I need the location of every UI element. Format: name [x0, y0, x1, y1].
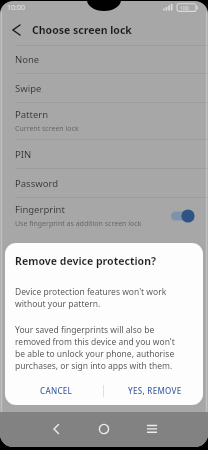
staticText: Swipe — [15, 82, 42, 95]
button[interactable] — [4, 19, 30, 41]
staticText: Current screen lock — [15, 124, 79, 134]
staticText: Remove device protection? — [15, 254, 157, 268]
button[interactable]: Swipe — [0, 74, 208, 102]
staticText: CANCEL — [40, 385, 73, 396]
staticText: 10:00 — [7, 3, 25, 13]
button[interactable] — [44, 418, 68, 440]
staticText: Choose screen lock — [32, 23, 132, 37]
staticText: PIN — [15, 148, 32, 161]
button[interactable] — [92, 418, 116, 440]
staticText: Device protection features won't work wi… — [15, 286, 167, 310]
button[interactable]: YES, REMOVE — [113, 378, 197, 403]
staticText: None — [15, 53, 40, 66]
staticText: 100 — [180, 5, 189, 12]
staticText: Use fingerprint as addition screen lock — [15, 219, 142, 229]
button[interactable]: PIN — [0, 140, 208, 168]
button[interactable] — [140, 418, 164, 440]
staticText: Pattern — [15, 108, 49, 121]
staticText: Fingerprint — [15, 203, 65, 216]
button[interactable]: Pattern — [0, 103, 208, 139]
button[interactable]: Fingerprint — [0, 198, 208, 234]
button[interactable]: Password — [0, 169, 208, 197]
staticText: Password — [15, 177, 58, 190]
button[interactable]: CANCEL — [25, 378, 87, 403]
staticText: YES, REMOVE — [128, 385, 182, 396]
staticText: Your saved fingerprints will also be rem… — [15, 324, 175, 372]
button[interactable]: None — [0, 46, 208, 73]
